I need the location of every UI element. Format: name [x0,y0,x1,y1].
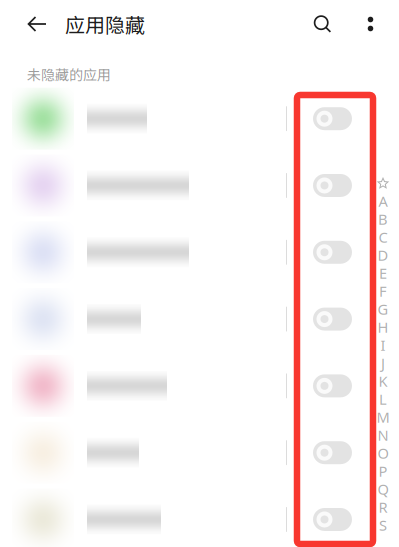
staticText: J [381,353,385,373]
staticText: K [378,371,387,391]
staticText: 应用隐藏 [65,9,145,38]
staticText: 未隐藏的应用 [27,64,111,84]
button[interactable]: Back [0,14,65,33]
staticText: C [378,227,387,247]
staticText: D [377,245,388,265]
button[interactable] [0,352,399,419]
staticText: R [378,497,387,517]
staticText: E [379,263,387,283]
staticText: M [376,407,389,427]
staticText: A [378,191,387,211]
staticText: Q [377,479,388,499]
button[interactable] [0,152,399,219]
staticText: H [377,317,388,337]
button[interactable] [0,219,399,286]
staticText: G [377,299,388,319]
button[interactable]: More options [340,14,399,33]
button[interactable]: Search [305,14,340,33]
staticText: N [377,425,388,445]
button[interactable] [0,85,399,152]
staticText: B [378,209,388,229]
button[interactable]: Alphabet index [376,174,390,534]
button[interactable] [0,486,399,547]
staticText: F [379,281,387,301]
staticText: P [378,461,387,481]
staticText: I [380,335,385,355]
staticText: S [379,515,387,535]
button[interactable] [0,286,399,352]
button[interactable] [0,419,399,486]
staticText: L [379,389,387,409]
staticText: O [377,443,388,463]
